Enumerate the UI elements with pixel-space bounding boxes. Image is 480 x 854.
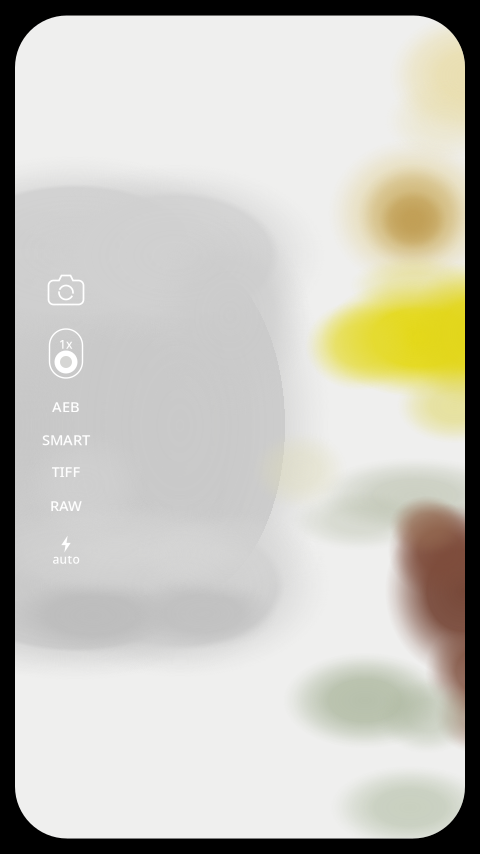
staticText: SMART: [42, 430, 90, 449]
staticText: AEB: [52, 397, 80, 416]
button[interactable]: AEB: [28, 395, 104, 417]
staticText: TIFF: [51, 462, 80, 481]
button[interactable]: RAW: [28, 494, 104, 516]
button[interactable]: TIFF: [28, 460, 104, 482]
button[interactable]: Switch camera: [43, 268, 89, 310]
button[interactable]: Flash auto: [38, 533, 94, 567]
button[interactable]: 1x lens: [44, 324, 88, 382]
staticText: auto: [52, 551, 79, 567]
button[interactable]: SMART: [28, 428, 104, 450]
staticText: 1x: [59, 336, 73, 352]
staticText: RAW: [50, 496, 82, 515]
